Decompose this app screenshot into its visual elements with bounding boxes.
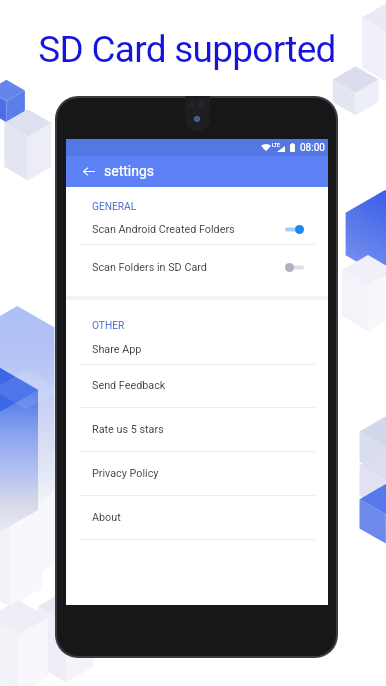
button[interactable]: Back (78, 162, 100, 181)
staticText: Send Feedback (92, 379, 166, 392)
staticText: OTHER (92, 320, 125, 332)
staticText: About (92, 511, 121, 524)
button[interactable]: Share App (66, 334, 328, 365)
staticText: Share App (92, 343, 142, 356)
button[interactable]: Send Feedback (66, 364, 328, 407)
staticText: Scan Android Created Folders (92, 223, 235, 236)
button[interactable]: Scan Android Created Folders (66, 214, 328, 245)
staticText: Privacy Policy (92, 467, 159, 480)
staticText: 08:00 (300, 142, 325, 154)
button[interactable]: Privacy Policy (66, 451, 328, 495)
button[interactable]: About (66, 495, 328, 539)
staticText: Rate us 5 stars (92, 423, 164, 436)
staticText: GENERAL (92, 201, 137, 213)
staticText: SD Card supported (0, 28, 380, 71)
button[interactable]: Scan Folders in SD Card (66, 252, 328, 283)
staticText: LTE (272, 142, 280, 148)
button[interactable]: Rate us 5 stars (66, 407, 328, 451)
staticText: settings (104, 163, 155, 179)
staticText: Scan Folders in SD Card (92, 261, 207, 274)
